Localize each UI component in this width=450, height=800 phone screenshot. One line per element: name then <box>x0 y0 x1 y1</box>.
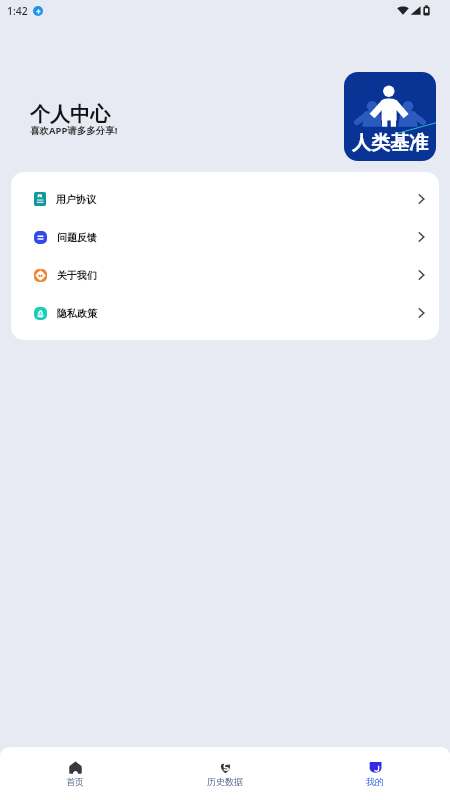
staticText: 个人中心 <box>30 102 110 127</box>
button[interactable]: 历史数据 <box>150 747 300 800</box>
button[interactable]: 我的 <box>300 747 450 800</box>
button[interactable]: 隐私政策 <box>11 294 439 332</box>
staticText: 用户协议 <box>56 193 96 206</box>
staticText: 首页 <box>66 776 84 787</box>
staticText: 喜欢APP请多多分享! <box>30 124 118 137</box>
button[interactable]: 用户协议 <box>11 180 439 218</box>
button[interactable]: 首页 <box>0 747 150 800</box>
staticText: 问题反馈 <box>57 231 97 244</box>
staticText: 1:42 <box>7 4 28 18</box>
button[interactable]: 关于我们 <box>11 256 439 294</box>
staticText: 我的 <box>366 776 384 787</box>
staticText: 人类基准 <box>352 131 428 155</box>
staticText: 隐私政策 <box>57 307 97 320</box>
staticText: 历史数据 <box>207 776 243 787</box>
staticText: 关于我们 <box>57 269 97 282</box>
button[interactable]: 问题反馈 <box>11 218 439 256</box>
